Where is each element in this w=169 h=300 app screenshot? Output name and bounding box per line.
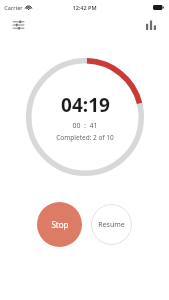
button[interactable]: Stop (37, 202, 82, 247)
staticText: 12:42 PM (72, 4, 97, 11)
staticText: Carrier (4, 4, 23, 11)
staticText: 04:19 (61, 92, 110, 118)
button[interactable]: Resume (91, 204, 132, 245)
staticText: Completed: 2 of 10 (56, 133, 114, 142)
staticText: 00 : 41 (72, 121, 98, 131)
staticText: Stop (51, 219, 69, 230)
button[interactable]: Settings (8, 15, 28, 35)
button[interactable]: Statistics (141, 15, 161, 35)
staticText: Resume (98, 220, 125, 230)
